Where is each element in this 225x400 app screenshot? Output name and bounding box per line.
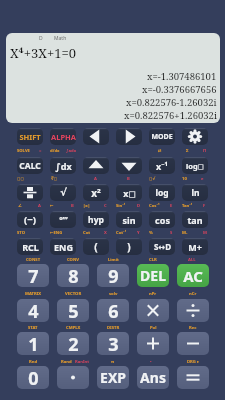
staticText: 3 <box>108 332 119 355</box>
button[interactable]: Settings <box>182 128 208 145</box>
staticText: ENG <box>54 241 73 253</box>
button[interactable]: ENG <box>50 238 76 255</box>
button[interactable]: log <box>149 184 175 201</box>
button[interactable]: 5 <box>57 299 89 322</box>
staticText: ⇄ <box>158 148 162 153</box>
button[interactable]: ln <box>182 184 208 201</box>
staticText: 4 <box>28 299 39 322</box>
staticText: Y <box>137 230 140 236</box>
staticText: D <box>39 35 43 42</box>
staticText: ←ENG <box>50 230 63 236</box>
button[interactable]: sin <box>116 211 142 228</box>
staticText: % <box>149 230 153 236</box>
button[interactable]: 6 <box>97 299 129 322</box>
button[interactable]: ( <box>83 238 109 255</box>
staticText: B <box>71 203 74 209</box>
button[interactable]: log◻ <box>182 157 208 174</box>
button[interactable]: AC <box>177 264 209 287</box>
staticText: ∫dx <box>55 160 72 172</box>
button[interactable]: x² <box>83 184 109 201</box>
staticText: 5 <box>68 299 79 322</box>
button[interactable]: MODE <box>149 128 175 145</box>
button[interactable]: Up <box>83 157 109 174</box>
staticText: MATRIX <box>25 291 42 297</box>
button[interactable]: 4 <box>17 299 49 322</box>
staticText: x² <box>91 186 101 200</box>
staticText: A <box>94 176 97 182</box>
staticText: Pol <box>150 325 157 331</box>
button[interactable]: tan <box>182 211 208 228</box>
button[interactable]: ) <box>116 238 142 255</box>
staticText: Rec <box>189 325 197 331</box>
button[interactable]: Down <box>116 157 142 174</box>
staticText: Rnd <box>29 359 38 365</box>
button[interactable]: cos <box>149 211 175 228</box>
button[interactable]: 2 <box>57 332 89 355</box>
staticText: Math <box>54 35 67 42</box>
button[interactable]: 3 <box>97 332 129 355</box>
staticText: x=-0.3376667656 <box>142 83 217 96</box>
staticText: (−) <box>24 213 36 226</box>
button[interactable]: ∫dx <box>50 157 76 174</box>
button[interactable]: SHIFT <box>17 128 43 145</box>
button[interactable]: Left <box>83 128 109 145</box>
button[interactable]: M+ <box>182 238 208 255</box>
button[interactable]: 0 <box>17 366 49 389</box>
staticText: B <box>127 176 130 182</box>
staticText: SOLVE <box>17 148 30 154</box>
staticText: D <box>137 203 141 209</box>
button[interactable]: 7 <box>17 264 49 287</box>
staticText: 1 <box>28 332 39 355</box>
staticText: Ans <box>140 368 166 387</box>
button[interactable]: °’’’ <box>50 211 76 228</box>
staticText: CONV <box>67 257 80 263</box>
staticText: S↔D <box>154 241 171 252</box>
button[interactable]: 8 <box>57 264 89 287</box>
button[interactable]: Right <box>116 128 142 145</box>
button[interactable]: x⁻¹ <box>149 157 175 174</box>
staticText: X <box>104 230 107 236</box>
button[interactable]: 1 <box>17 332 49 355</box>
button[interactable]: 9 <box>97 264 129 287</box>
staticText: Cot <box>83 230 91 236</box>
button[interactable]: (−) <box>17 211 43 228</box>
button[interactable]: RCL <box>17 238 43 255</box>
button[interactable]: Divide <box>177 299 209 322</box>
staticText: Cot⁻¹ <box>116 230 127 236</box>
staticText: 7 <box>28 264 39 287</box>
staticText: ∠ <box>18 203 22 208</box>
staticText: e <box>201 176 204 182</box>
button[interactable]: √ <box>50 184 76 201</box>
button[interactable]: S↔D <box>149 238 175 255</box>
staticText: ln <box>191 187 200 199</box>
button[interactable]: CALC <box>17 157 43 174</box>
staticText: ( <box>94 240 98 254</box>
button[interactable]: hyp <box>83 211 109 228</box>
staticText: E <box>170 203 173 209</box>
button[interactable]: Minus <box>177 332 209 355</box>
staticText: 0 <box>28 366 39 389</box>
staticText: CMPLX <box>66 325 81 331</box>
button[interactable]: Fraction <box>17 184 43 201</box>
staticText: • <box>150 359 152 365</box>
button[interactable]: Decimal point <box>57 366 89 389</box>
staticText: x=-1.307486101 <box>147 70 217 83</box>
button[interactable]: DEL <box>137 264 169 287</box>
button[interactable]: Equals <box>177 366 209 389</box>
button[interactable]: Ans <box>137 366 169 389</box>
staticText: ◻◻ <box>17 176 24 181</box>
staticText: x⁻¹ <box>156 160 168 172</box>
staticText: x=0.822576-1.26032i <box>126 96 217 109</box>
button[interactable]: Plus <box>137 332 169 355</box>
button[interactable]: ALPHA <box>50 128 76 145</box>
staticText: EXP <box>100 368 126 387</box>
staticText: Sin⁻¹ <box>116 203 126 209</box>
staticText: CALC <box>19 160 41 172</box>
staticText: log <box>155 187 169 199</box>
button[interactable]: EXP <box>97 366 129 389</box>
button[interactable]: x◻ <box>116 184 142 201</box>
staticText: Σ <box>186 148 189 154</box>
button[interactable]: Multiply <box>137 299 169 322</box>
staticText: 9 <box>108 264 119 287</box>
staticText: M+ <box>188 241 202 253</box>
